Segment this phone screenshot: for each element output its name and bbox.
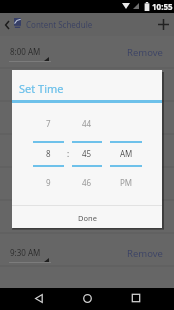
staticText: 44 — [82, 118, 92, 129]
button[interactable]: Recent apps — [121, 288, 150, 308]
staticText: Set Time — [19, 81, 64, 96]
button[interactable]: 9:30 AM — [7, 243, 53, 265]
staticText: 10:55 — [152, 1, 173, 12]
button[interactable]: 8:00 AM — [7, 42, 53, 64]
staticText: Remove — [127, 247, 163, 260]
button[interactable]: Remove — [119, 42, 171, 63]
button[interactable]: Add — [152, 13, 174, 36]
staticText: 45 — [82, 148, 92, 159]
button[interactable]: Done — [12, 206, 162, 229]
button[interactable]: 44 — [72, 112, 102, 134]
staticText: AM — [120, 148, 133, 159]
button[interactable]: 7 — [33, 112, 64, 134]
staticText: 9:30 AM — [10, 247, 41, 258]
button[interactable]: Remove — [119, 243, 171, 264]
button[interactable]: Back — [24, 288, 53, 308]
staticText: 8:00 AM — [10, 46, 41, 57]
button[interactable]: PM — [110, 171, 142, 193]
staticText: 8 — [46, 148, 51, 159]
button[interactable]: 46 — [72, 171, 102, 193]
staticText: Content Schedule — [26, 19, 93, 30]
button[interactable]: Home — [72, 288, 102, 308]
staticText: Remove — [127, 46, 163, 59]
staticText: 9 — [46, 177, 51, 188]
staticText: 46 — [82, 177, 92, 188]
button[interactable]: 45 — [72, 142, 102, 164]
button[interactable]: AM — [110, 142, 142, 164]
staticText: : — [67, 148, 70, 159]
button[interactable]: 9 — [33, 171, 64, 193]
staticText: 7 — [46, 118, 51, 129]
button[interactable]: 8 — [33, 142, 64, 164]
button[interactable]: Navigate up — [0, 14, 13, 35]
staticText: Done — [78, 213, 97, 223]
staticText: PM — [120, 177, 133, 188]
